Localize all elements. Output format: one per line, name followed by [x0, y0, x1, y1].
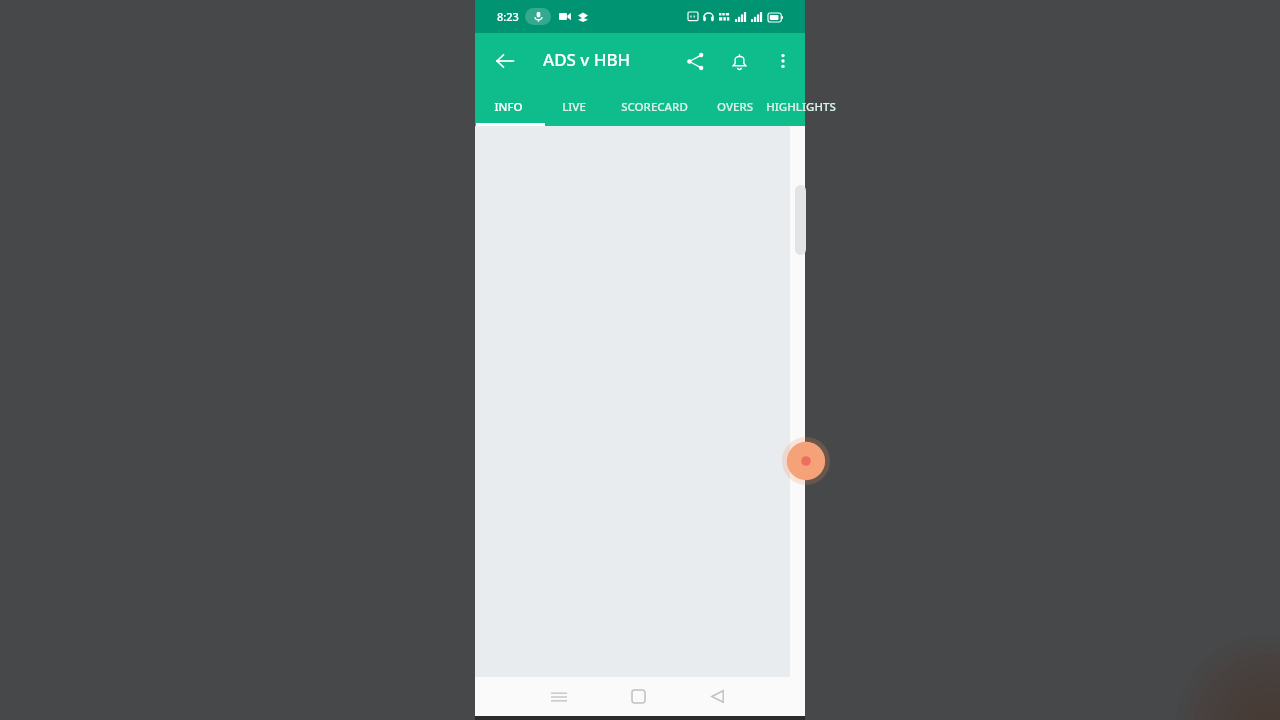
button[interactable]: LIVE — [543, 88, 605, 126]
button[interactable]: Back — [697, 677, 737, 716]
staticText: SCORECARD — [621, 99, 688, 115]
staticText: 8:23 — [497, 9, 519, 24]
button[interactable]: HIGHLIGHTS — [751, 88, 851, 126]
button[interactable]: Notifications — [721, 43, 757, 79]
staticText: INFO — [494, 99, 523, 115]
button[interactable]: More options — [765, 43, 801, 79]
button[interactable]: Stop recording — [782, 437, 830, 485]
button[interactable]: Home — [618, 677, 658, 716]
staticText: ADS v HBH — [543, 48, 631, 71]
button[interactable]: OVERS — [702, 88, 768, 126]
button[interactable]: Back — [487, 43, 523, 79]
button[interactable]: Share — [677, 43, 713, 79]
button[interactable]: Recent apps — [539, 677, 579, 716]
staticText: LIVE — [562, 99, 586, 115]
button[interactable]: INFO — [473, 88, 543, 126]
button[interactable]: SCORECARD — [604, 88, 704, 126]
staticText: OVERS — [717, 99, 753, 115]
staticText: HIGHLIGHTS — [766, 99, 836, 115]
